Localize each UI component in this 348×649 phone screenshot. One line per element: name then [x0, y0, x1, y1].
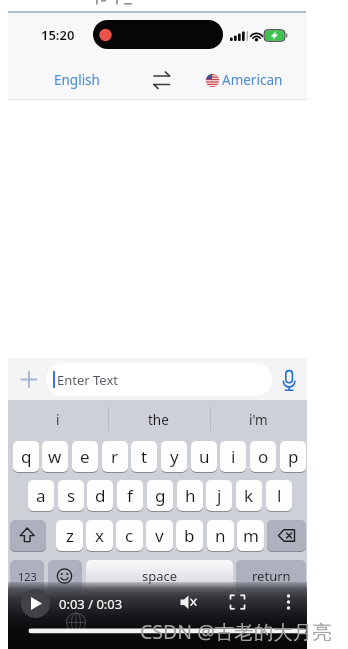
button[interactable]: d — [87, 480, 113, 511]
staticText: c — [125, 524, 134, 547]
button[interactable]: v — [146, 520, 173, 551]
staticText: y — [170, 445, 179, 468]
button[interactable]: m — [237, 520, 264, 551]
staticText: space — [142, 567, 178, 585]
button[interactable]: h — [177, 480, 203, 511]
staticText: Enter Text — [57, 371, 118, 389]
staticText: the — [148, 411, 169, 429]
button[interactable]: w — [42, 441, 68, 472]
staticText: English — [54, 71, 100, 89]
staticText: u — [199, 445, 210, 468]
staticText: h — [185, 484, 196, 507]
staticText: CSDN @古老的大月亮 — [140, 618, 332, 645]
button[interactable]: j — [206, 480, 232, 511]
button[interactable]: b — [176, 520, 203, 551]
button[interactable]: 123 — [10, 560, 44, 592]
staticText: 123 — [18, 569, 37, 584]
button[interactable]: e — [72, 441, 98, 472]
button[interactable] — [230, 591, 249, 613]
staticText: e — [80, 445, 90, 468]
button[interactable] — [176, 591, 199, 613]
staticText: a — [36, 484, 46, 507]
button[interactable]: i'm — [212, 404, 305, 435]
staticText: m — [243, 524, 259, 547]
button[interactable]: English — [46, 66, 108, 94]
button[interactable]: g — [147, 480, 173, 511]
button[interactable]: n — [207, 520, 234, 551]
staticText: 15:20 — [41, 26, 75, 44]
staticText: v — [155, 524, 164, 547]
staticText: i — [231, 445, 236, 468]
button[interactable] — [48, 560, 82, 592]
button[interactable] — [148, 66, 178, 94]
staticText: z — [66, 524, 74, 547]
staticText: return — [252, 567, 291, 585]
staticText: x — [95, 524, 104, 547]
button[interactable]: i — [10, 404, 105, 435]
staticText: q — [21, 445, 32, 468]
button[interactable]: c — [116, 520, 143, 551]
button[interactable]: i — [220, 441, 246, 472]
staticText: i — [56, 411, 60, 429]
staticText: p — [288, 445, 299, 468]
staticText: l — [277, 484, 282, 507]
staticText: f — [127, 484, 133, 507]
staticText: g — [155, 484, 166, 507]
button[interactable] — [200, 66, 286, 94]
button[interactable]: t — [131, 441, 157, 472]
staticText: n — [215, 524, 226, 547]
staticText: i'm — [249, 411, 268, 429]
button[interactable] — [10, 520, 46, 551]
staticText: r — [111, 445, 119, 468]
staticText: w — [48, 445, 62, 468]
staticText: k — [244, 484, 254, 507]
staticText: American — [222, 71, 283, 89]
staticText: b — [184, 524, 195, 547]
staticText: s — [67, 484, 76, 507]
button[interactable]: a — [28, 480, 54, 511]
button[interactable]: the — [110, 404, 207, 435]
button[interactable]: k — [236, 480, 262, 511]
button[interactable]: q — [13, 441, 39, 472]
staticText: o — [258, 445, 269, 468]
button[interactable]: z — [56, 520, 83, 551]
button[interactable]: return — [236, 560, 306, 592]
button[interactable] — [21, 589, 50, 618]
staticText: t — [141, 445, 148, 468]
button[interactable]: r — [102, 441, 128, 472]
button[interactable] — [267, 520, 306, 551]
button[interactable]: x — [86, 520, 113, 551]
button[interactable] — [18, 368, 40, 390]
button[interactable]: y — [161, 441, 187, 472]
button[interactable] — [282, 591, 295, 613]
button[interactable]: space — [86, 560, 233, 592]
staticText: j — [217, 484, 222, 507]
button[interactable]: s — [58, 480, 84, 511]
button[interactable] — [278, 366, 302, 393]
button[interactable]: f — [117, 480, 143, 511]
staticText: d — [95, 484, 106, 507]
staticText: 0:03 / 0:03 — [59, 595, 123, 612]
button[interactable] — [46, 363, 272, 396]
button[interactable]: l — [266, 480, 292, 511]
button[interactable]: p — [280, 441, 306, 472]
button[interactable]: o — [250, 441, 276, 472]
button[interactable]: u — [191, 441, 217, 472]
